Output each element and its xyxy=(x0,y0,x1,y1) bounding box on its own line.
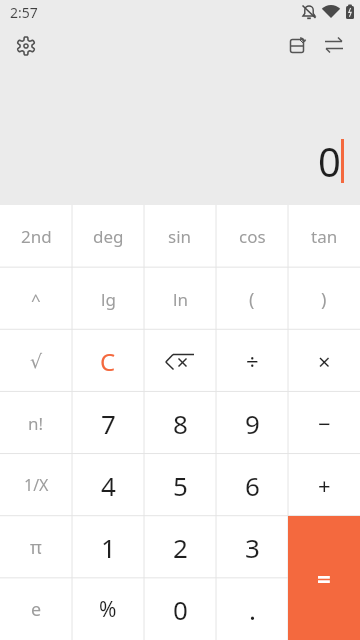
staticText: 3 xyxy=(245,530,260,565)
button[interactable]: 3 xyxy=(216,516,288,578)
staticText: 1 xyxy=(101,530,116,565)
button[interactable]: ln xyxy=(144,268,216,330)
staticText: 5 xyxy=(173,468,188,503)
staticText: sin xyxy=(168,225,192,248)
staticText: 6 xyxy=(245,468,260,503)
staticText: C xyxy=(100,345,116,378)
button[interactable]: cos xyxy=(216,205,288,268)
button[interactable]: × xyxy=(288,330,360,392)
staticText: tan xyxy=(311,225,338,248)
button[interactable]: . xyxy=(216,578,288,640)
button[interactable]: 2nd xyxy=(0,205,72,268)
button[interactable]: 0 xyxy=(144,578,216,640)
staticText: 9 xyxy=(245,406,260,441)
button[interactable]: 5 xyxy=(144,454,216,516)
staticText: 0 xyxy=(318,134,341,188)
staticText: cos xyxy=(239,225,266,248)
button[interactable]: % xyxy=(72,578,144,640)
staticText: 2:57 xyxy=(10,3,38,22)
staticText: ( xyxy=(249,287,255,312)
staticText: √ xyxy=(30,350,43,372)
staticText: + xyxy=(318,470,331,500)
staticText: π xyxy=(30,535,42,560)
staticText: ) xyxy=(321,287,327,312)
button[interactable]: 1 xyxy=(72,516,144,578)
button[interactable]: 1/X xyxy=(0,454,72,516)
staticText: ^ xyxy=(31,288,41,311)
staticText: . xyxy=(249,592,256,627)
button[interactable]: sin xyxy=(144,205,216,268)
staticText: ln xyxy=(173,288,188,311)
staticText: 2 xyxy=(173,530,188,565)
staticText: = xyxy=(317,562,331,595)
staticText: e xyxy=(31,597,42,622)
button[interactable]: ) xyxy=(288,268,360,330)
button[interactable]: ( xyxy=(216,268,288,330)
staticText: % xyxy=(99,595,117,624)
button[interactable]: tan xyxy=(288,205,360,268)
staticText: lg xyxy=(101,288,116,311)
button[interactable]: 6 xyxy=(216,454,288,516)
staticText: 1/X xyxy=(24,474,49,496)
button[interactable]: C xyxy=(72,330,144,392)
staticText: 7 xyxy=(101,406,116,441)
button[interactable] xyxy=(318,30,350,62)
button[interactable] xyxy=(282,30,314,62)
button[interactable]: ÷ xyxy=(216,330,288,392)
staticText: × xyxy=(318,346,331,376)
staticText: deg xyxy=(93,225,124,248)
button[interactable]: + xyxy=(288,454,360,516)
button[interactable]: = xyxy=(288,516,360,640)
button[interactable]: n! xyxy=(0,392,72,454)
staticText: 8 xyxy=(173,406,188,441)
button[interactable]: ^ xyxy=(0,268,72,330)
button[interactable]: deg xyxy=(72,205,144,268)
button[interactable]: lg xyxy=(72,268,144,330)
button[interactable]: 7 xyxy=(72,392,144,454)
button[interactable]: e xyxy=(0,578,72,640)
button[interactable] xyxy=(10,30,42,62)
staticText: 4 xyxy=(101,468,116,503)
button[interactable]: 8 xyxy=(144,392,216,454)
button[interactable]: − xyxy=(288,392,360,454)
button[interactable]: π xyxy=(0,516,72,578)
button[interactable]: √ xyxy=(0,330,72,392)
button[interactable]: 4 xyxy=(72,454,144,516)
staticText: 0 xyxy=(173,592,188,627)
staticText: n! xyxy=(28,412,44,435)
staticText: − xyxy=(318,408,331,438)
staticText: ÷ xyxy=(246,346,259,376)
button[interactable]: 9 xyxy=(216,392,288,454)
staticText: 2nd xyxy=(21,225,52,248)
button[interactable]: 2 xyxy=(144,516,216,578)
button[interactable] xyxy=(144,330,216,392)
